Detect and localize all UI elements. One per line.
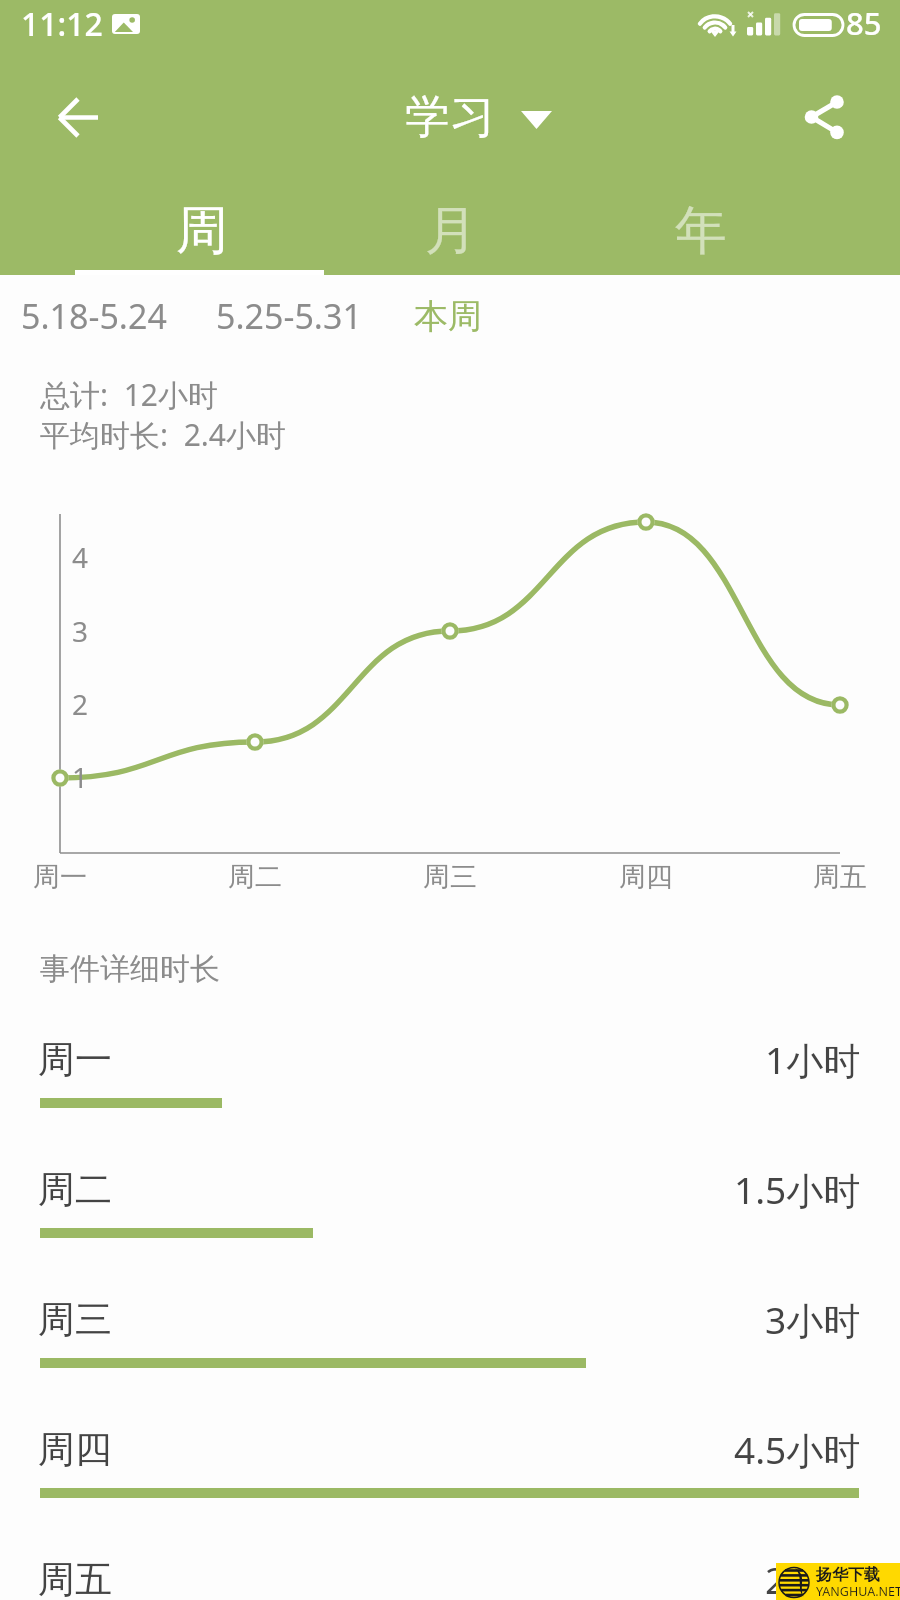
staticText: 平均时长: 2.4小时 [40,414,286,455]
staticText: 学习 [405,89,495,146]
button[interactable]: Share [794,84,860,150]
staticText: YANGHUA.NET [816,1583,900,1600]
staticText: 事件详细时长 [40,950,220,988]
button[interactable]: 周五 [0,1540,900,1600]
staticText: 周五 [38,1556,112,1600]
staticText: 2 [72,685,89,723]
staticText: 周 [176,198,228,264]
staticText: 年 [675,198,727,264]
staticText: 周二 [228,860,282,894]
staticText: 周一 [33,860,87,894]
staticText: 85 [846,2,882,44]
staticText: 1 [72,758,89,796]
staticText: 月 [425,198,477,264]
button[interactable]: 年 [576,179,826,275]
staticText: 周四 [38,1426,112,1473]
staticText: 周二 [38,1166,112,1213]
staticText: 4 [72,538,89,576]
button[interactable]: 周一 [0,1020,900,1138]
button[interactable]: 周 [77,179,326,275]
staticText: 4.5小时 [734,1424,861,1475]
staticText: 1小时 [765,1034,861,1085]
button[interactable]: 周二 [0,1150,900,1268]
staticText: 3 [72,612,89,650]
staticText: 5.18-5.24 [21,293,167,339]
staticText: 11:12 [21,2,103,46]
staticText: 周四 [619,860,673,894]
button[interactable]: 5.25-5.31 [213,285,365,347]
staticText: 周三 [423,860,477,894]
staticText: 1.5小时 [734,1164,861,1215]
staticText: 总计: 12小时 [40,374,218,415]
button[interactable]: 5.18-5.24 [18,285,170,347]
button[interactable]: 周三 [0,1280,900,1398]
staticText: 本周 [414,295,482,338]
button[interactable]: 学习 [399,81,558,154]
staticText: 3小时 [765,1294,861,1345]
button[interactable]: 本周 [411,287,485,346]
button[interactable]: Back [44,84,110,150]
staticText: 扬华下载 [816,1565,880,1585]
staticText: 5.25-5.31 [216,293,362,339]
staticText: 周五 [813,860,867,894]
staticText: 周一 [38,1036,112,1083]
staticText: 周三 [38,1296,112,1343]
button[interactable]: 周四 [0,1410,900,1528]
button[interactable]: 月 [326,179,576,275]
staticText: 2小时 [765,1554,861,1600]
